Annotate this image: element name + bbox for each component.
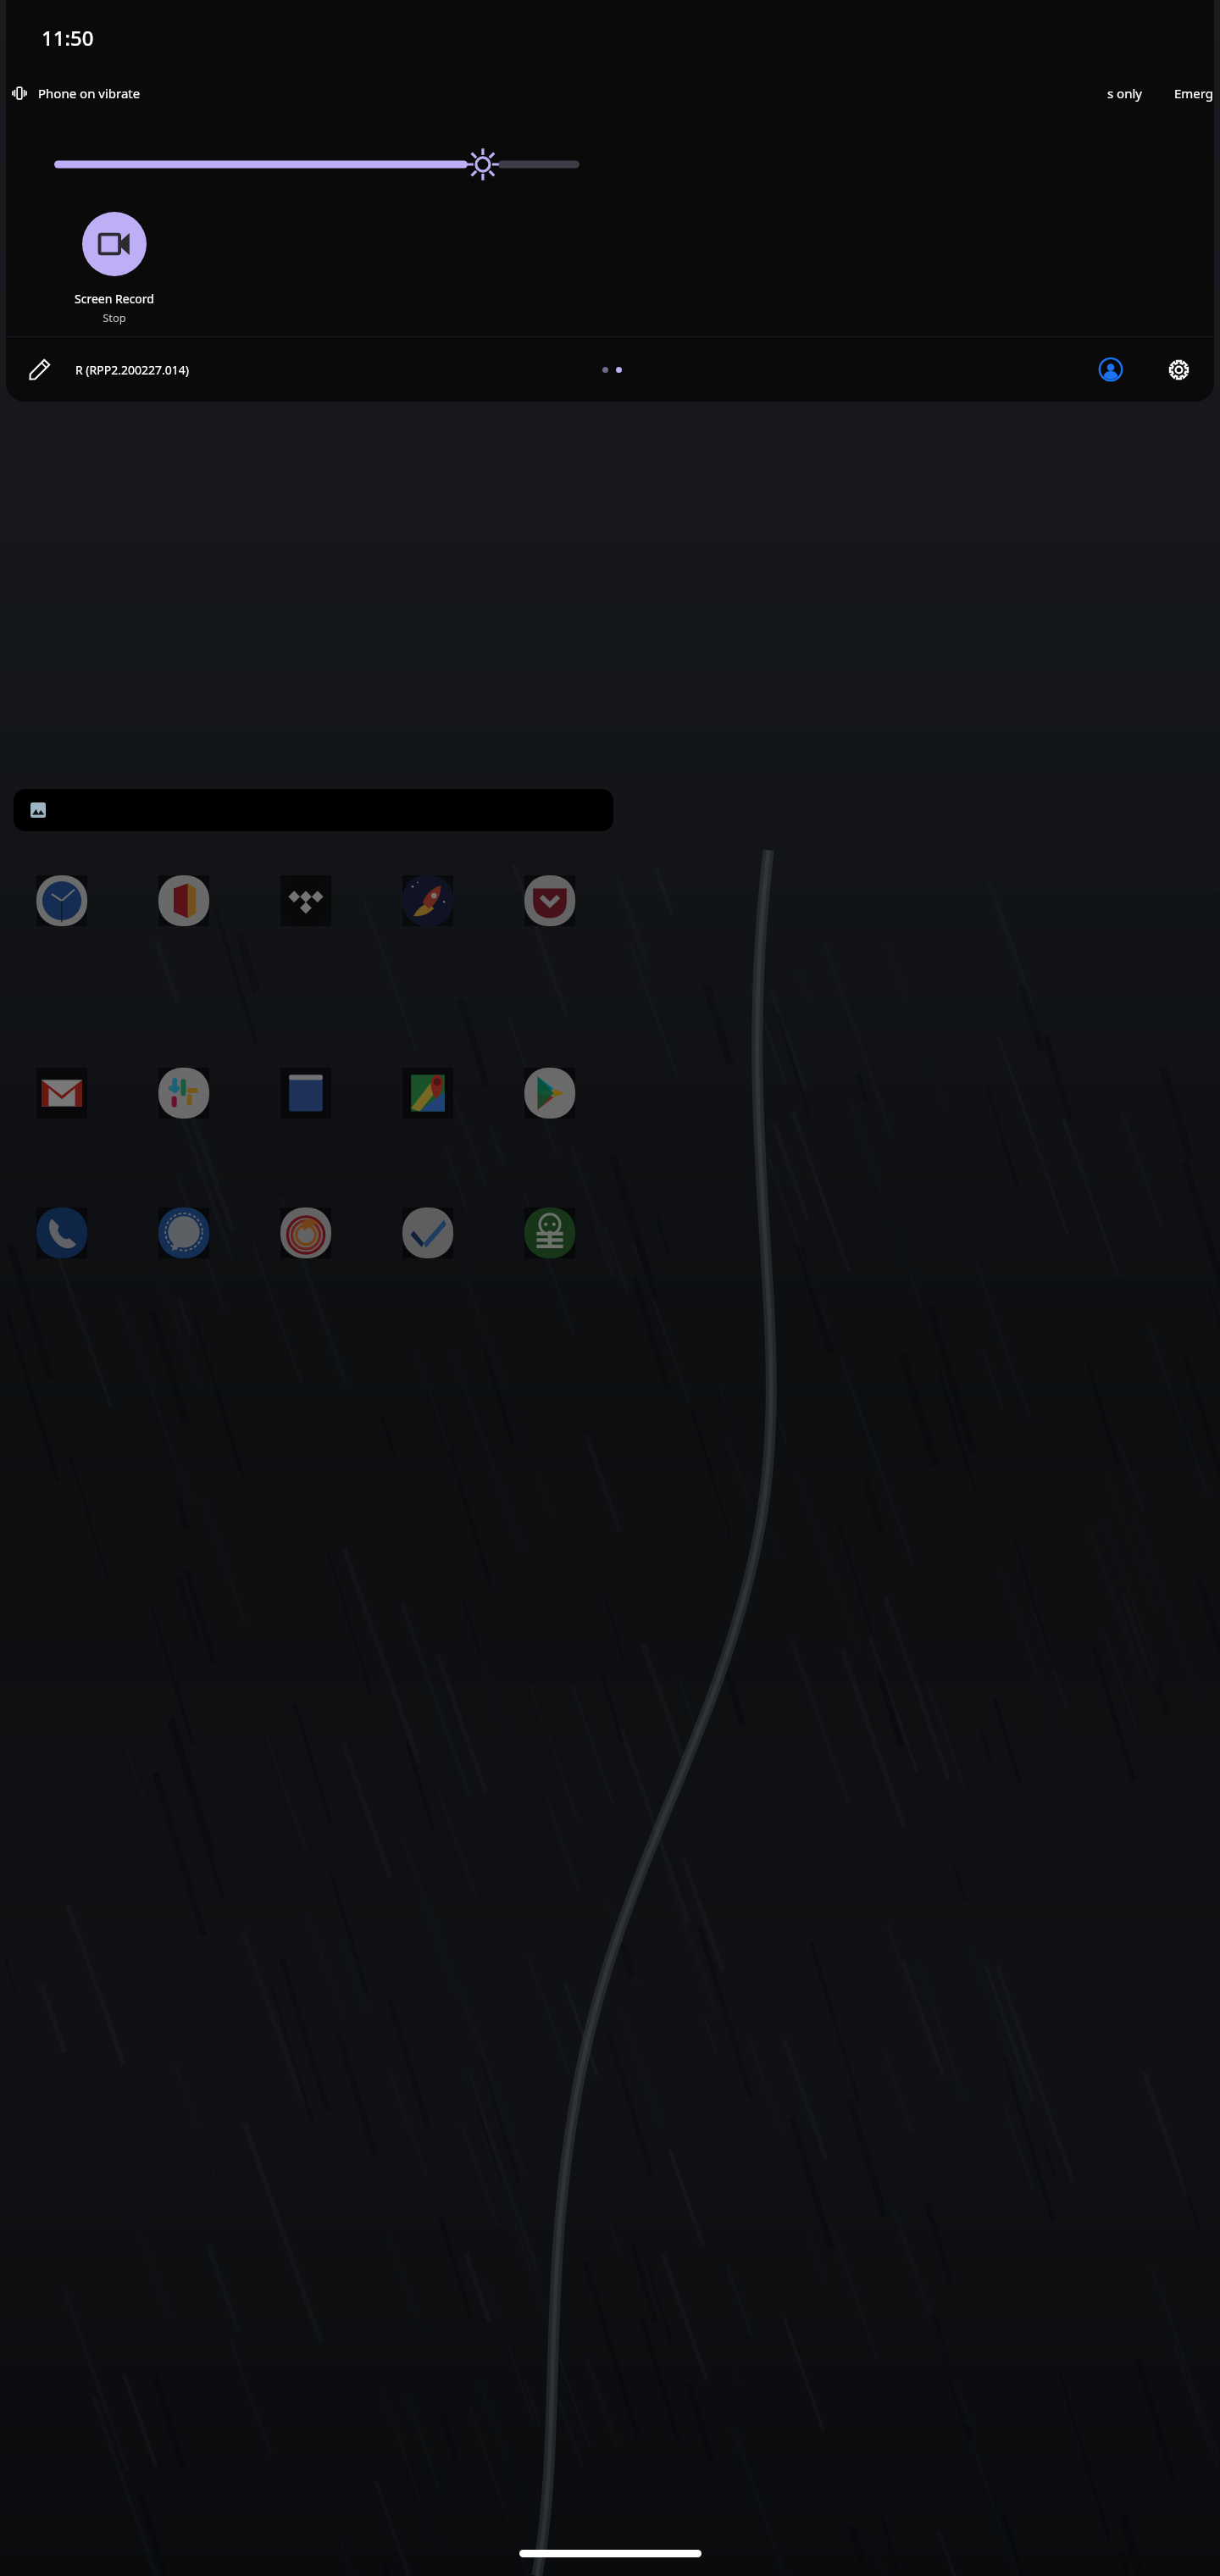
- button[interactable]: App: [280, 1068, 331, 1119]
- button[interactable]: App: [36, 1207, 87, 1258]
- button[interactable]: App: [524, 1068, 575, 1119]
- button[interactable]: App: [402, 1068, 453, 1119]
- button[interactable]: App: [402, 875, 453, 926]
- other: Phone on vibrate: [11, 85, 28, 102]
- button[interactable]: App: [158, 875, 209, 926]
- button[interactable]: App: [36, 1068, 87, 1119]
- staticText: Screen Record: [40, 291, 189, 307]
- button[interactable]: Edit tiles: [19, 349, 60, 390]
- button[interactable]: Screen Record: [40, 212, 189, 325]
- other: Screenshot notification: [30, 802, 46, 818]
- button[interactable]: App: [36, 875, 87, 926]
- button[interactable]: Brightness: [54, 146, 579, 183]
- staticText: 11:50: [42, 24, 94, 52]
- staticText: Emerg: [1174, 85, 1214, 102]
- staticText: s only: [1107, 85, 1142, 102]
- button[interactable]: User: [1090, 349, 1131, 390]
- button[interactable]: App: [158, 1068, 209, 1119]
- button[interactable]: App: [158, 1207, 209, 1258]
- button[interactable]: App: [524, 1207, 575, 1258]
- staticText: Phone on vibrate: [38, 85, 141, 102]
- button[interactable]: App: [280, 1207, 331, 1258]
- button[interactable]: App: [280, 875, 331, 926]
- button[interactable]: Settings: [1158, 349, 1199, 390]
- button[interactable]: Screenshot notification: [14, 789, 613, 831]
- staticText: R (RPP2.200227.014): [75, 362, 189, 378]
- button[interactable]: App: [524, 875, 575, 926]
- button[interactable]: App: [402, 1207, 453, 1258]
- staticText: Stop: [40, 310, 189, 325]
